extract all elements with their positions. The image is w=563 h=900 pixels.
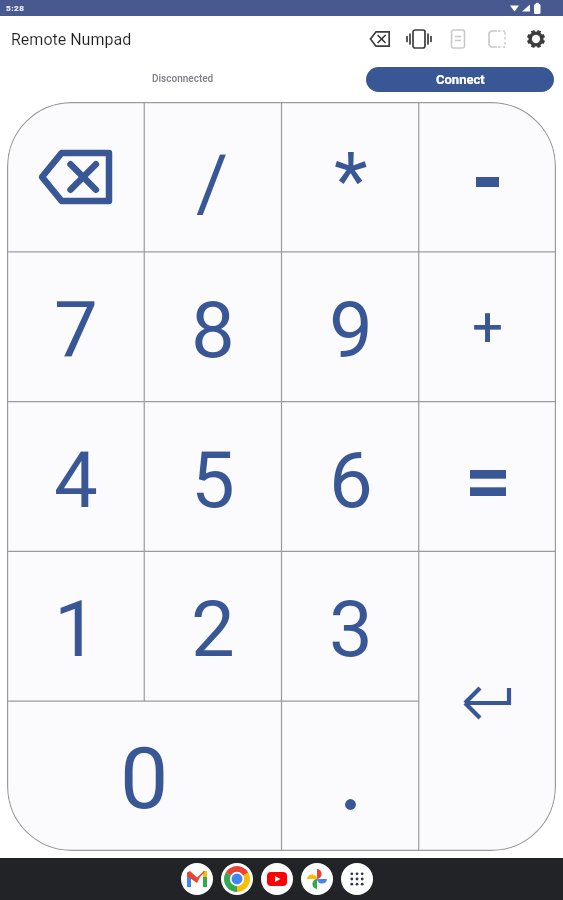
button[interactable]: Connect	[366, 67, 554, 92]
button[interactable]: 5	[144, 402, 281, 552]
button[interactable]: /	[144, 102, 281, 252]
button[interactable]	[301, 863, 333, 895]
staticText: /	[196, 138, 229, 229]
button[interactable]: 4	[7, 402, 144, 552]
staticText: 4	[54, 435, 98, 526]
staticText: 8	[191, 285, 235, 376]
button[interactable]	[419, 102, 556, 252]
button[interactable]	[261, 863, 293, 895]
staticText: *	[334, 136, 368, 227]
button[interactable]: 9	[282, 252, 419, 402]
button[interactable]	[399, 19, 438, 59]
staticText: 3	[329, 584, 373, 675]
button[interactable]	[282, 701, 419, 851]
staticText: 5:28	[6, 4, 25, 13]
staticText: 1	[54, 584, 98, 675]
staticText: 2	[191, 584, 235, 675]
staticText: 6	[329, 435, 373, 526]
button[interactable]	[341, 863, 373, 895]
button[interactable]	[360, 19, 399, 59]
button[interactable]	[419, 551, 556, 851]
button[interactable]: *	[282, 102, 419, 252]
button[interactable]: +	[419, 252, 556, 402]
button[interactable]	[221, 863, 253, 895]
staticText: Disconnected	[152, 73, 214, 85]
staticText: Connect	[436, 72, 485, 87]
staticText: Remote Numpad	[11, 30, 132, 49]
button[interactable]	[419, 402, 556, 552]
button[interactable]	[516, 19, 555, 59]
button[interactable]: 7	[7, 252, 144, 402]
button[interactable]: 3	[282, 551, 419, 701]
button[interactable]: 8	[144, 252, 281, 402]
staticText: 9	[329, 285, 373, 376]
staticText: 0	[120, 728, 169, 829]
staticText: 7	[54, 285, 98, 376]
button[interactable]: 6	[282, 402, 419, 552]
staticText: +	[472, 295, 504, 359]
button[interactable]	[438, 19, 477, 59]
button[interactable]: 1	[7, 551, 144, 701]
staticText: 5	[191, 435, 235, 526]
button[interactable]	[477, 19, 516, 59]
button[interactable]: 2	[144, 551, 281, 701]
button[interactable]	[7, 102, 144, 252]
button[interactable]	[181, 863, 213, 895]
button[interactable]: 0	[7, 701, 282, 851]
